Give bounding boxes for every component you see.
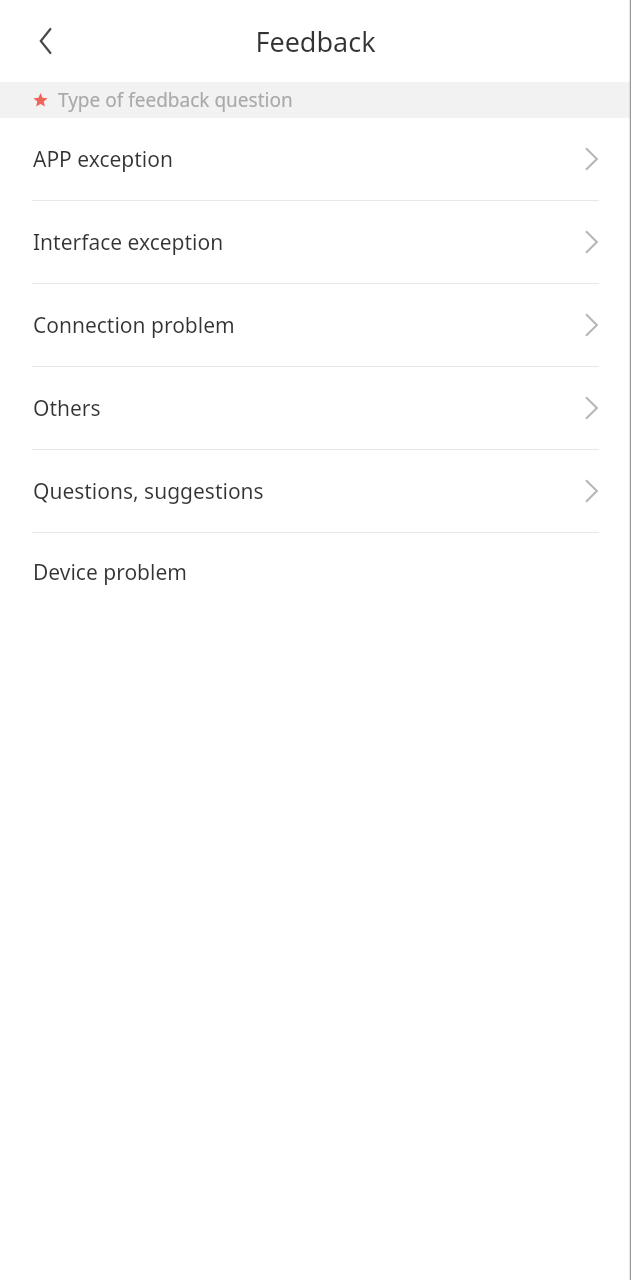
button[interactable]: Questions, suggestions (0, 450, 631, 532)
button[interactable]: Device problem (0, 533, 631, 611)
staticText: Feedback (0, 23, 631, 60)
staticText: Questions, suggestions (33, 477, 584, 506)
staticText: Interface exception (33, 228, 584, 257)
staticText: Device problem (33, 558, 599, 587)
button[interactable]: Others (0, 367, 631, 449)
staticText: Connection problem (33, 311, 584, 340)
staticText: APP exception (33, 145, 584, 174)
button[interactable]: Back (20, 15, 72, 67)
button[interactable]: Interface exception (0, 201, 631, 283)
staticText: Others (33, 394, 584, 423)
button[interactable]: APP exception (0, 118, 631, 200)
button[interactable]: Connection problem (0, 284, 631, 366)
staticText: Type of feedback question (58, 87, 293, 113)
